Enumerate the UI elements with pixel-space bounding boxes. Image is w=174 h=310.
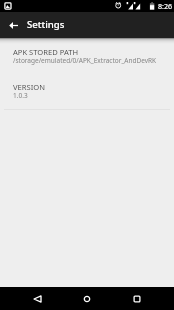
staticText: 8:26 xyxy=(158,1,173,11)
staticText: /storage/emulated/0/APK_Extractor_AndDev… xyxy=(13,56,157,65)
button[interactable]: Back xyxy=(0,12,26,38)
staticText: VERSION xyxy=(13,82,45,92)
button[interactable]: Home xyxy=(62,287,112,310)
staticText: APK STORED PATH xyxy=(13,47,79,57)
button[interactable]: Back xyxy=(12,287,62,310)
staticText: Settings xyxy=(27,18,65,31)
staticText: 1.0.3 xyxy=(13,91,28,100)
button[interactable]: Recent apps xyxy=(112,287,162,310)
button[interactable]: APK STORED PATH xyxy=(0,45,174,68)
button[interactable]: VERSION xyxy=(0,80,174,103)
